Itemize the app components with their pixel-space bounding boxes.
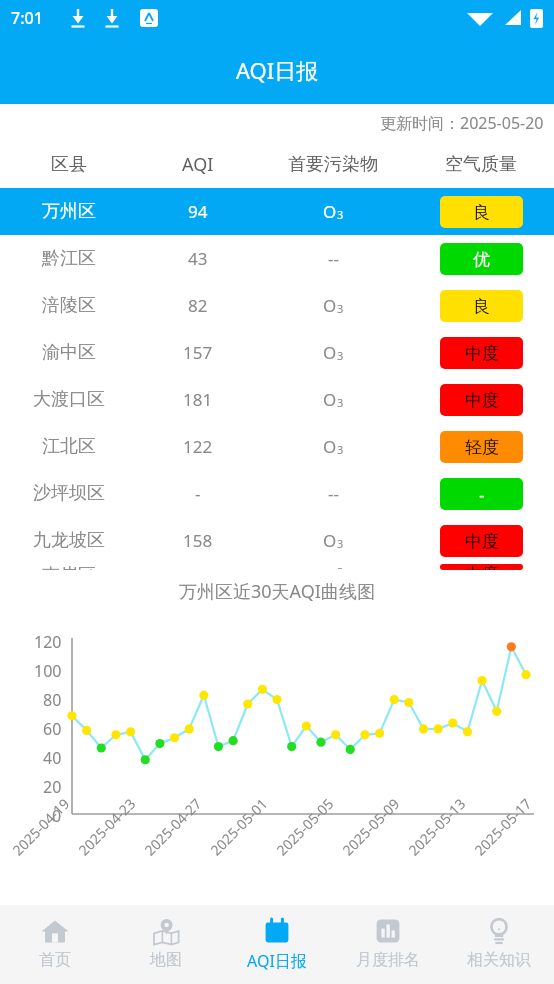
button[interactable]: 地图: [110, 905, 221, 984]
staticText: -: [479, 483, 485, 506]
staticText: 中度: [465, 343, 499, 364]
button[interactable]: 南岸区: [0, 564, 554, 570]
staticText: --: [328, 482, 339, 505]
staticText: 2025-04-27: [140, 794, 206, 859]
staticText: 空气质量: [445, 153, 517, 176]
button[interactable]: 相关知识: [443, 905, 554, 984]
staticText: -: [195, 482, 201, 505]
staticText: O: [323, 529, 337, 552]
button[interactable]: AQI日报: [0, 36, 554, 104]
button[interactable]: 首页: [0, 905, 110, 984]
staticText: AQI: [182, 152, 214, 177]
button[interactable]: 月度排名: [332, 905, 443, 984]
staticText: 良: [473, 296, 490, 317]
button[interactable]: 黔江区: [0, 235, 554, 282]
staticText: O: [323, 341, 337, 364]
staticText: 2025-05-01: [206, 794, 272, 859]
staticText: 120: [34, 631, 62, 653]
button[interactable]: 万州区: [0, 188, 554, 235]
staticText: 3: [337, 395, 344, 410]
staticText: 181: [183, 388, 213, 411]
staticText: 40: [43, 747, 62, 769]
staticText: 首要污染物: [288, 153, 378, 176]
button[interactable]: AQI日报: [221, 905, 332, 984]
staticText: AQI日报: [247, 950, 307, 972]
staticText: 大渡口区: [33, 388, 105, 411]
staticText: 43: [188, 247, 208, 270]
staticText: 沙坪坝区: [33, 482, 105, 505]
staticText: 轻度: [465, 437, 499, 458]
staticText: 2025-05-17: [470, 794, 536, 859]
staticText: --: [328, 247, 339, 270]
staticText: 100: [34, 660, 62, 682]
staticText: O: [323, 294, 337, 317]
staticText: 3: [337, 348, 344, 363]
staticText: 80: [43, 689, 62, 711]
staticText: 3: [337, 207, 344, 222]
staticText: 区县: [51, 153, 87, 176]
staticText: 3: [337, 564, 344, 569]
button[interactable]: 江北区: [0, 423, 554, 470]
staticText: 20: [43, 776, 62, 798]
staticText: 江北区: [42, 435, 96, 458]
staticText: 中度: [465, 531, 499, 552]
staticText: 0: [52, 805, 62, 827]
staticText: 中度: [465, 390, 499, 411]
staticText: 渝中区: [42, 341, 96, 364]
staticText: 中度: [465, 564, 499, 570]
staticText: 60: [43, 718, 62, 740]
staticText: O: [323, 435, 337, 458]
staticText: 2025-04-23: [74, 794, 140, 859]
staticText: 158: [183, 529, 213, 552]
staticText: 南岸区: [42, 564, 96, 570]
staticText: 相关知识: [467, 950, 531, 970]
staticText: 82: [188, 294, 208, 317]
staticText: 94: [188, 200, 208, 223]
staticText: O: [323, 388, 337, 411]
button[interactable]: 沙坪坝区: [0, 470, 554, 517]
staticText: 2025-05-05: [272, 794, 338, 859]
button[interactable]: 涪陵区: [0, 282, 554, 329]
staticText: 2025-05-13: [404, 794, 470, 859]
staticText: 3: [337, 536, 344, 551]
staticText: 优: [473, 249, 490, 270]
staticText: 地图: [150, 950, 182, 970]
staticText: 更新时间：2025-05-20: [380, 112, 544, 134]
staticText: 首页: [39, 950, 71, 970]
staticText: 黔江区: [42, 247, 96, 270]
staticText: 157: [183, 341, 213, 364]
staticText: 122: [183, 435, 213, 458]
staticText: 月度排名: [356, 950, 420, 970]
button[interactable]: 大渡口区: [0, 376, 554, 423]
staticText: 7:01: [11, 7, 43, 29]
staticText: 九龙坡区: [33, 529, 105, 552]
staticText: O: [323, 200, 337, 223]
staticText: 良: [473, 202, 490, 223]
button[interactable]: 九龙坡区: [0, 517, 554, 564]
staticText: 万州区: [42, 200, 96, 223]
button[interactable]: 渝中区: [0, 329, 554, 376]
staticText: 涪陵区: [42, 294, 96, 317]
staticText: AQI日报: [236, 55, 319, 85]
staticText: 3: [337, 301, 344, 316]
staticText: 2025-05-09: [338, 794, 404, 859]
staticText: 3: [337, 442, 344, 457]
staticText: 万州区近30天AQI曲线图: [179, 579, 375, 604]
staticText: 2025-04-19: [8, 794, 74, 859]
